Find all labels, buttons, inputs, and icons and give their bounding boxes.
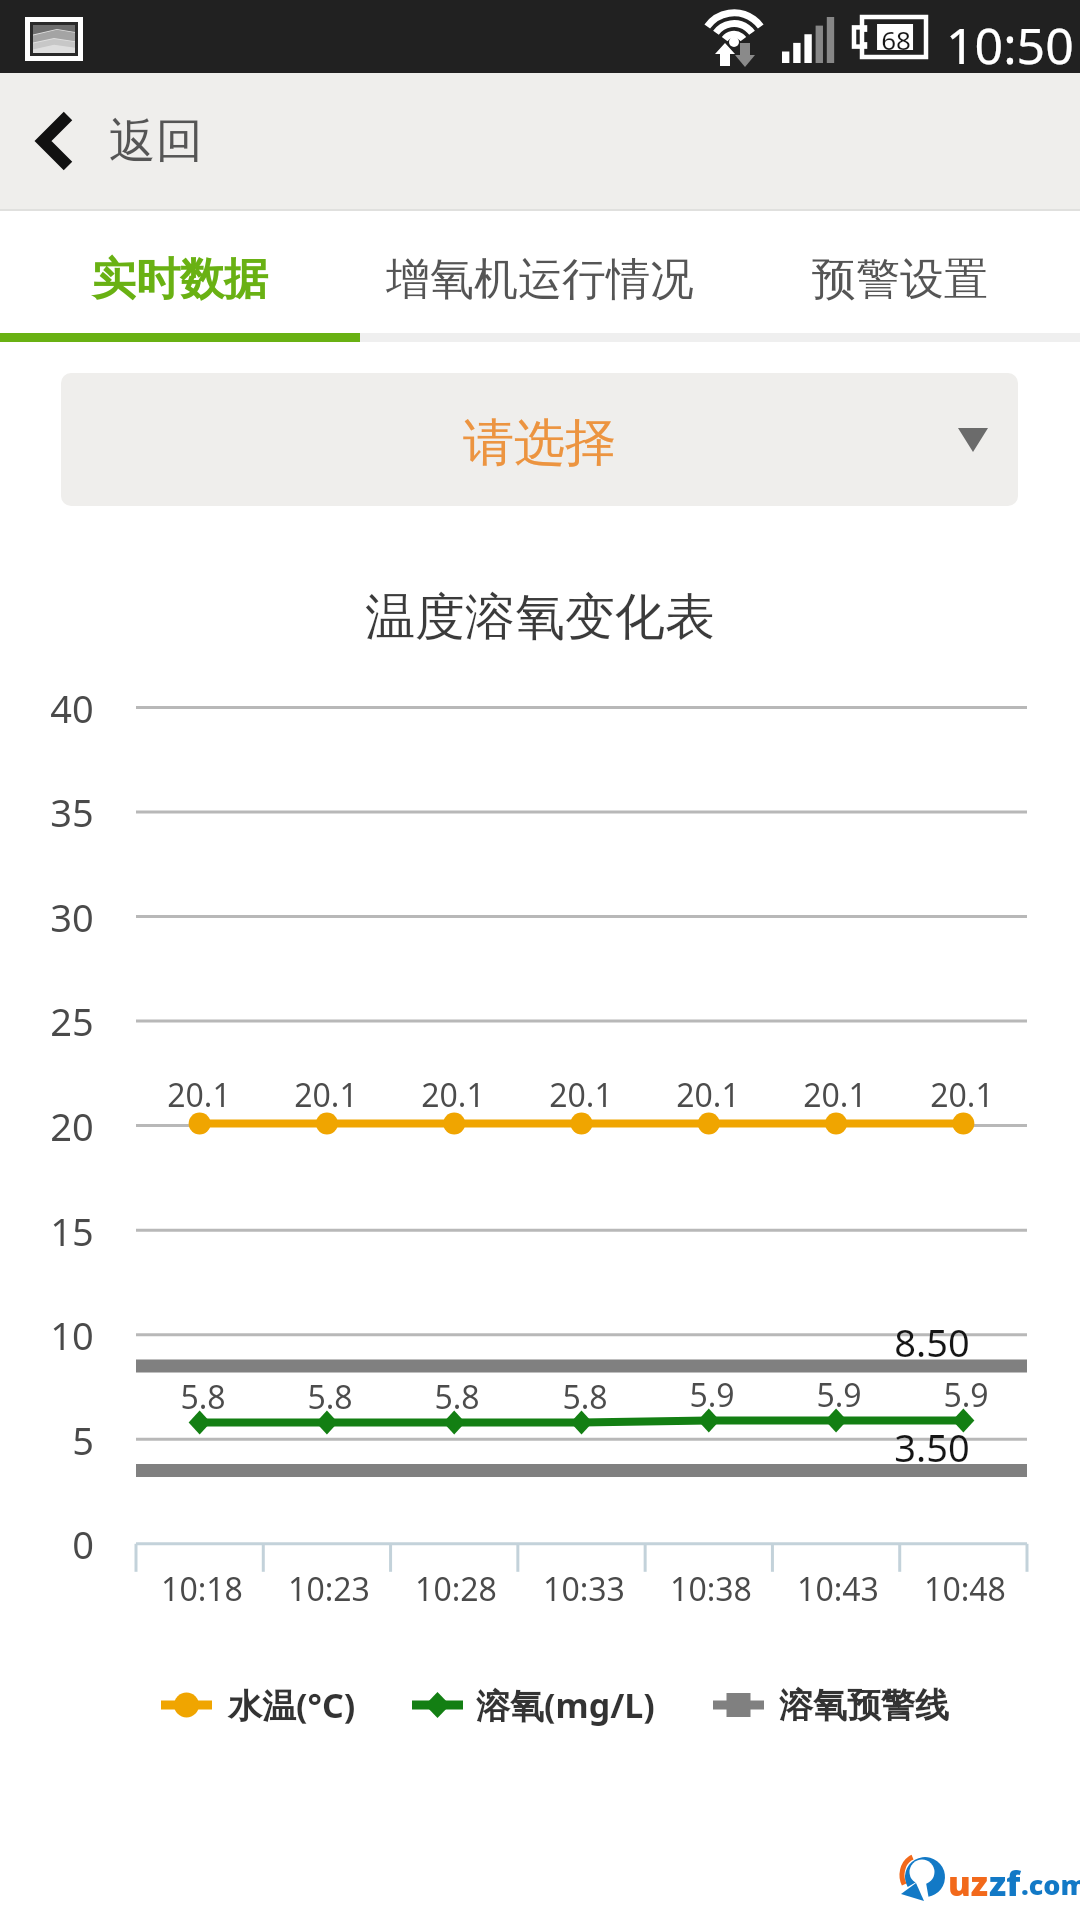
staticText: 20.1 <box>930 1073 994 1117</box>
staticText: 40 <box>50 682 94 734</box>
staticText: 20.1 <box>549 1073 613 1117</box>
staticText: 20.1 <box>167 1073 231 1117</box>
staticText: 5.8 <box>180 1375 226 1419</box>
staticText: 8.50 <box>894 1316 970 1368</box>
staticText: uz <box>948 1860 989 1906</box>
staticText: 10:18 <box>161 1567 243 1611</box>
staticText: 68 <box>876 22 916 57</box>
staticText: 5.8 <box>434 1375 480 1419</box>
button[interactable]: 溶氧预警线 <box>713 1672 949 1738</box>
button[interactable]: 实时数据 <box>0 218 360 340</box>
staticText: 5.8 <box>562 1375 608 1419</box>
staticText: 预警设置 <box>812 252 988 307</box>
staticText: 10 <box>50 1309 94 1361</box>
staticText: 5.8 <box>307 1375 353 1419</box>
button[interactable]: 预警设置 <box>720 218 1080 340</box>
staticText: 5.9 <box>816 1373 862 1417</box>
staticText: 温度溶氧变化表 <box>365 586 715 649</box>
staticText: 10:23 <box>288 1567 370 1611</box>
staticText: 3.50 <box>894 1421 970 1473</box>
staticText: 10:33 <box>543 1567 625 1611</box>
button[interactable]: 溶氧(mg/L) <box>412 1672 655 1738</box>
staticText: 实时数据 <box>92 252 268 307</box>
staticText: 5.9 <box>943 1373 989 1417</box>
staticText: 20.1 <box>676 1073 740 1117</box>
staticText: zf <box>989 1860 1021 1906</box>
staticText: 20.1 <box>803 1073 867 1117</box>
staticText: 返回 <box>109 112 203 171</box>
staticText: 水温(°C) <box>228 1682 356 1728</box>
staticText: 溶氧(mg/L) <box>476 1682 655 1728</box>
staticText: 10:48 <box>924 1567 1006 1611</box>
staticText: 10:28 <box>415 1567 497 1611</box>
staticText: 5.9 <box>689 1373 735 1417</box>
staticText: 请选择 <box>463 411 616 475</box>
button[interactable]: 水温(°C) <box>161 1672 356 1738</box>
staticText: 20 <box>50 1100 94 1152</box>
button[interactable]: 增氧机运行情况 <box>360 218 720 340</box>
staticText: 10:43 <box>797 1567 879 1611</box>
staticText: 增氧机运行情况 <box>386 252 694 307</box>
staticText: 10:38 <box>670 1567 752 1611</box>
staticText: 20.1 <box>294 1073 358 1117</box>
staticText: 20.1 <box>421 1073 485 1117</box>
staticText: 35 <box>50 786 94 838</box>
staticText: 15 <box>50 1205 94 1257</box>
button[interactable]: 返回 <box>0 73 1080 209</box>
button[interactable]: 请选择 <box>61 373 1018 506</box>
staticText: 25 <box>50 995 94 1047</box>
staticText: 10:50 <box>946 11 1074 79</box>
staticText: 30 <box>50 891 94 943</box>
staticText: 0 <box>72 1518 94 1570</box>
staticText: 溶氧预警线 <box>779 1684 949 1727</box>
staticText: .com <box>1021 1866 1080 1903</box>
staticText: 5 <box>72 1414 94 1466</box>
